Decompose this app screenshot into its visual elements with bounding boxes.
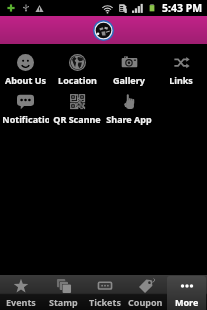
staticText: Location: [58, 74, 97, 86]
button[interactable]: Gallery: [103, 49, 155, 88]
button[interactable]: Links: [155, 49, 207, 88]
staticText: Links: [169, 74, 193, 86]
staticText: Notifications: [2, 113, 49, 125]
button[interactable]: QR Scanner: [51, 88, 103, 127]
staticText: Share App: [106, 113, 152, 125]
button[interactable]: About Us: [0, 49, 51, 88]
button[interactable]: Events: [1, 276, 41, 310]
staticText: Events: [6, 296, 36, 308]
button[interactable]: Tickets: [85, 276, 124, 310]
staticText: QR Scanner: [53, 113, 101, 125]
button[interactable]: Coupon: [126, 276, 165, 310]
button[interactable]: Notifications: [0, 88, 51, 127]
button[interactable]: More: [167, 276, 206, 310]
button[interactable]: Location: [51, 49, 103, 88]
staticText: 5:43 PM: [162, 1, 203, 15]
button[interactable]: Share App: [103, 88, 155, 127]
staticText: Coupon: [128, 296, 163, 308]
staticText: Gallery: [113, 74, 145, 86]
staticText: Stamp: [49, 296, 78, 308]
button[interactable]: Stamp: [43, 276, 83, 310]
staticText: Tickets: [89, 296, 121, 308]
staticText: More: [175, 296, 199, 308]
staticText: About Us: [5, 74, 46, 86]
